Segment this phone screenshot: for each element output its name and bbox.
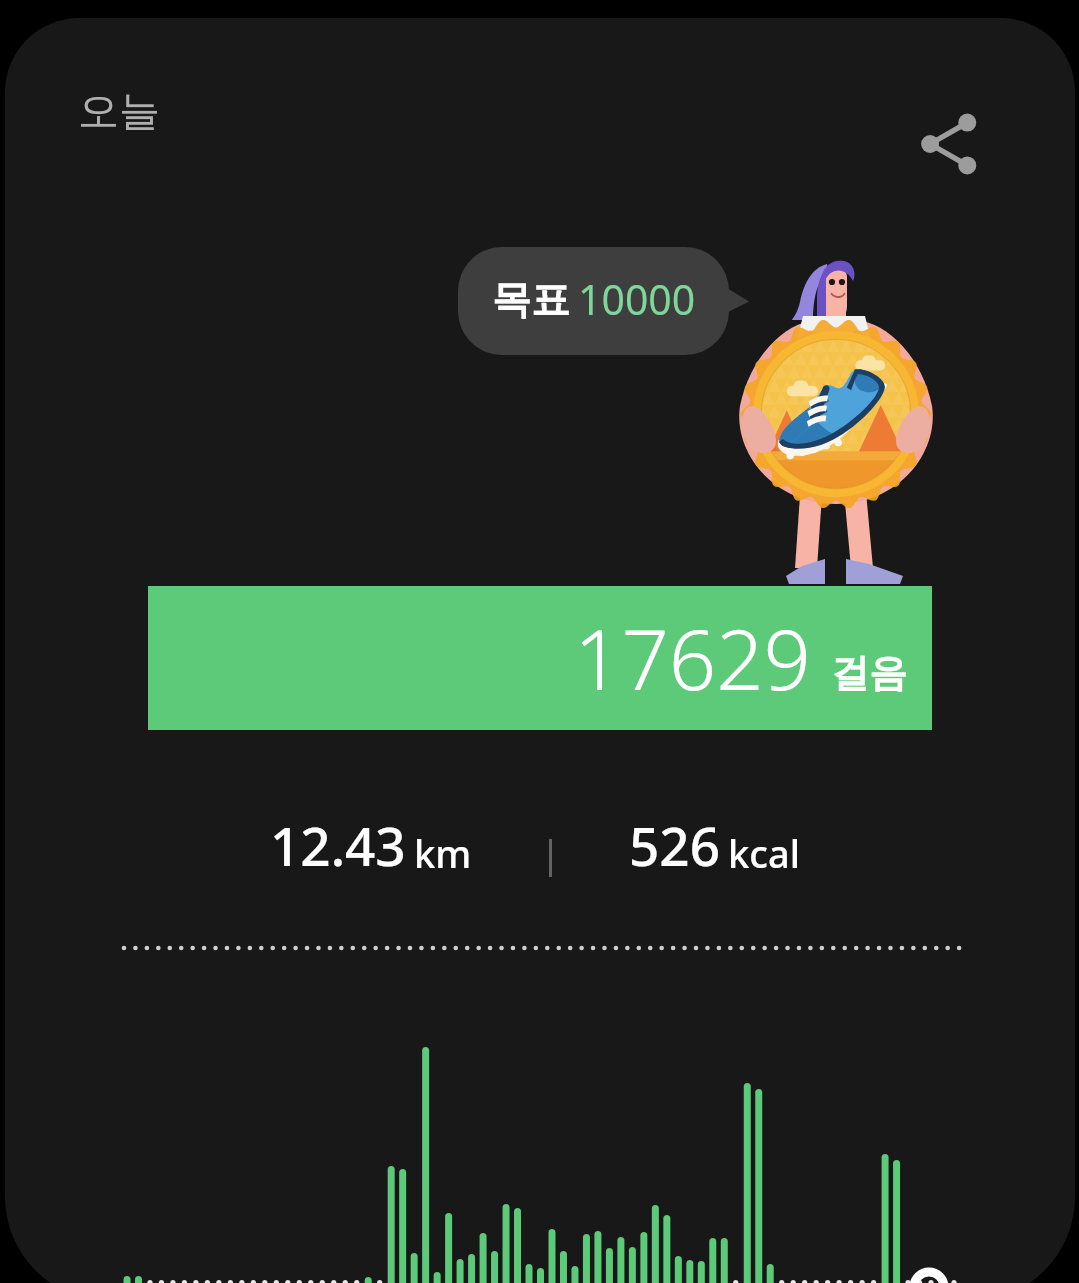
button[interactable]: Share [901, 96, 997, 192]
staticText: km [414, 827, 472, 879]
staticText: 12.43 [270, 809, 406, 881]
staticText: 10000 [578, 271, 696, 327]
staticText: 526 [629, 809, 720, 881]
staticText: kcal [728, 827, 800, 879]
staticText: 17629 [574, 601, 811, 714]
staticText: 오늘 [78, 86, 160, 138]
button[interactable]: 17629 [148, 586, 932, 730]
staticText: 걸음 [831, 649, 907, 697]
staticText: 목표 [492, 275, 570, 324]
